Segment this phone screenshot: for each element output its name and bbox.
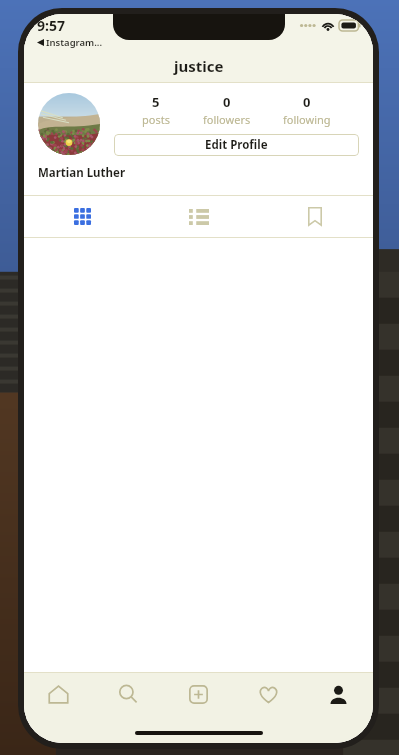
staticText: Martian Luther	[38, 165, 126, 181]
button[interactable]: List view	[141, 196, 257, 237]
button[interactable]: Saved	[257, 196, 373, 237]
staticText: justice	[174, 56, 224, 76]
staticText: 9:57	[37, 16, 65, 35]
button[interactable]: 0	[279, 93, 335, 127]
button[interactable]: Activity	[233, 673, 303, 715]
button[interactable]: Search	[93, 673, 163, 715]
staticText: 5	[152, 93, 160, 111]
button[interactable]: 5	[138, 93, 174, 127]
button[interactable]: New post	[163, 673, 233, 715]
staticText: Instagram...	[46, 36, 103, 49]
staticText: 0	[303, 93, 311, 111]
button[interactable]: Grid view	[24, 196, 141, 237]
button[interactable]: Edit Profile	[114, 134, 359, 156]
staticText: 0	[223, 93, 231, 111]
staticText: Edit Profile	[205, 137, 268, 153]
staticText: following	[283, 112, 331, 127]
staticText: followers	[203, 112, 251, 127]
staticText: posts	[142, 112, 170, 127]
button[interactable]: 0	[199, 93, 255, 127]
button[interactable]: Home	[24, 673, 93, 715]
button[interactable]: Profile photo	[38, 93, 100, 155]
button[interactable]: Profile	[303, 673, 373, 715]
